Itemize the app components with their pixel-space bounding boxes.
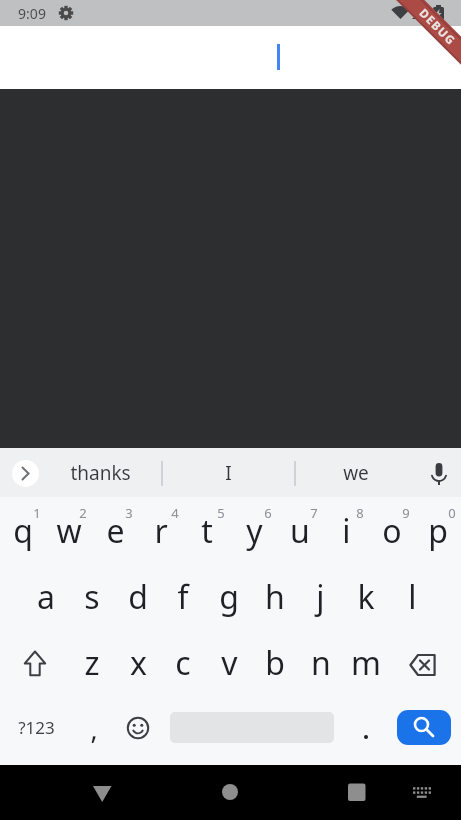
staticText: y [246,509,263,553]
staticText: a [37,575,55,619]
staticText: q [13,509,33,553]
staticText: 2 [79,504,87,522]
staticText: m [351,641,381,685]
staticText: I [225,460,232,486]
staticText: k [357,575,375,619]
staticText: 9 [402,504,410,522]
staticText: j [316,575,325,619]
staticText: n [311,641,331,685]
staticText: d [128,575,148,619]
staticText: 9:09 [18,4,46,23]
staticText: r [154,509,168,553]
staticText: l [408,575,417,619]
staticText: ?123 [18,716,55,739]
staticText: DEBUG [416,5,459,49]
staticText: u [290,509,310,553]
staticText: 7 [310,504,318,522]
staticText: z [84,641,100,685]
staticText: , [90,710,98,747]
staticText: f [177,575,189,619]
staticText: h [265,575,285,619]
staticText: 6 [264,504,272,522]
staticText: c [175,641,191,685]
staticText: x [130,641,147,685]
staticText: i [342,509,351,553]
staticText: 4 [171,504,179,522]
staticText: 5 [217,504,225,522]
staticText: o [382,509,402,553]
staticText: e [106,509,125,553]
staticText: 8 [356,504,364,522]
staticText: 1 [33,504,41,522]
staticText: t [201,509,213,553]
staticText: b [265,641,285,685]
staticText: v [221,641,238,685]
staticText: thanks [70,460,131,486]
staticText: p [428,509,448,553]
staticText: we [343,460,369,486]
staticText: 3 [125,504,133,522]
staticText: w [56,509,82,553]
staticText: s [84,575,100,619]
staticText: g [219,575,239,619]
staticText: 0 [448,504,456,522]
